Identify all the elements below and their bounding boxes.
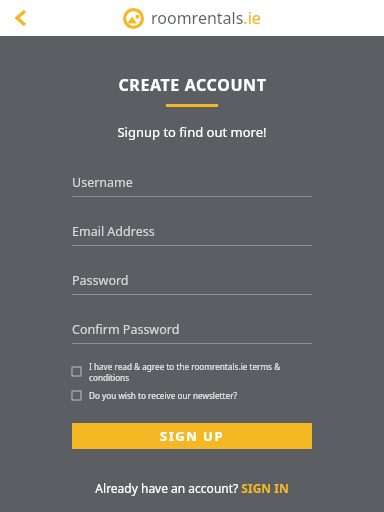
staticText: Confirm Password [72,321,180,338]
button[interactable]: SIGN UP [72,423,312,449]
staticText: Username [72,174,133,191]
button[interactable]: Back [4,1,38,35]
staticText: Already have an account? SIGN IN [95,480,289,496]
staticText: Password [72,272,129,289]
staticText: SIGN UP [160,427,224,445]
staticText: roomrentals.ie [151,7,261,29]
button[interactable]: Already have an account? SIGN IN [72,480,312,496]
button[interactable]: Do you wish to receive our newsletter? [72,385,312,405]
staticText: Email Address [72,223,155,240]
staticText: CREATE ACCOUNT [118,74,267,96]
button[interactable]: I have read & agree to the roomrentals.i… [72,361,312,381]
staticText: I have read & agree to the roomrentals.i… [89,361,312,381]
button[interactable]: Email Address [72,217,312,246]
staticText: Signup to find out more! [117,123,267,141]
staticText: Do you wish to receive our newsletter? [89,390,238,401]
button[interactable]: Password [72,266,312,295]
button[interactable]: Username [72,168,312,197]
button[interactable]: Confirm Password [72,315,312,344]
